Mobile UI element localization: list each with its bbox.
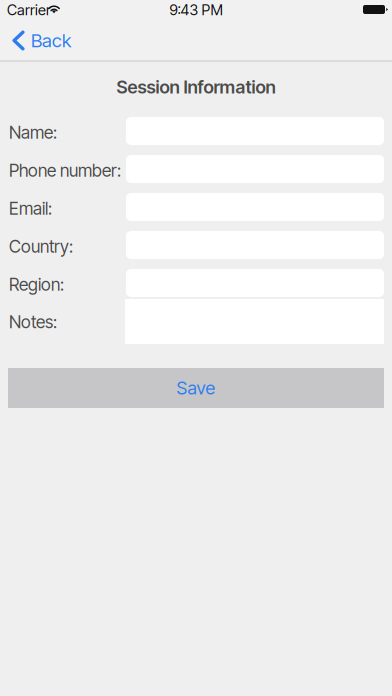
staticText: Region: [9, 274, 64, 295]
staticText: Name: [9, 122, 57, 143]
staticText: Save [176, 377, 215, 399]
staticText: Carrier [7, 1, 51, 19]
staticText: 9:43 PM [169, 1, 222, 19]
button[interactable]: Save [8, 368, 384, 408]
staticText: Email: [9, 198, 52, 219]
button[interactable]: Back [0, 20, 85, 61]
staticText: Notes: [9, 311, 57, 332]
staticText: Phone number: [9, 160, 121, 181]
staticText: Back [31, 29, 71, 52]
staticText: Session Information [116, 76, 275, 98]
staticText: Country: [9, 236, 73, 257]
